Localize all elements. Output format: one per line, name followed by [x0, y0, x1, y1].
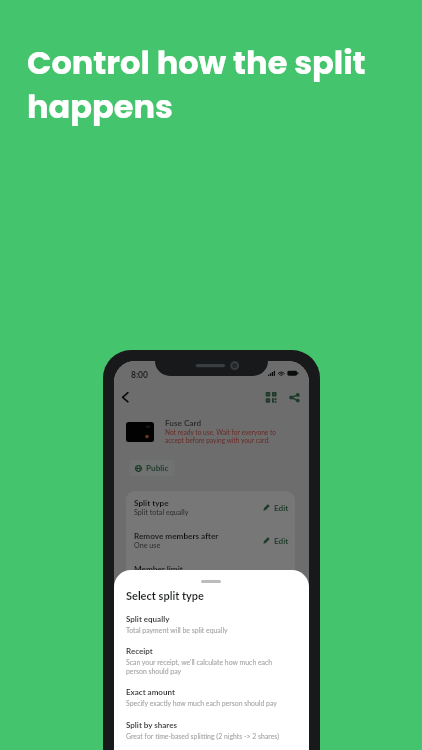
staticText: Specify exactly how much each person sho… — [126, 699, 277, 707]
staticText: 8:00 — [131, 370, 148, 380]
button[interactable]: Share — [287, 390, 303, 406]
staticText: Total payment will be split equally — [126, 626, 228, 634]
staticText: Edit — [274, 569, 289, 579]
staticText: Split equally — [126, 614, 170, 624]
button[interactable]: Receipt — [114, 645, 309, 679]
button[interactable]: Split type — [126, 491, 295, 524]
button[interactable]: Exact amount — [114, 686, 309, 711]
staticText: Scan your receipt, we'll calculate how m… — [126, 658, 273, 675]
staticText: One use — [134, 541, 161, 550]
button[interactable]: Split equally — [114, 613, 309, 638]
staticText: Public — [146, 463, 169, 473]
staticText: Remove members after — [134, 531, 219, 541]
staticText: Great for time-based splitting (2 nights… — [126, 732, 280, 740]
staticText: Split type — [134, 498, 169, 508]
staticText: Exact amount — [126, 687, 175, 697]
button[interactable]: Split by shares — [114, 719, 309, 744]
staticText: Split total equally — [134, 508, 189, 517]
staticText: Control how the split happens — [27, 40, 366, 129]
staticText: Not ready to use. Wait for everyone to a… — [165, 428, 277, 445]
staticText: Split by shares — [126, 720, 177, 730]
button[interactable]: Remove members after — [126, 524, 295, 557]
staticText: Receipt — [126, 646, 153, 656]
staticText: Member limit — [134, 564, 183, 574]
staticText: Select split type — [126, 589, 204, 602]
staticText: Edit — [274, 536, 289, 546]
button[interactable]: Back — [117, 387, 135, 405]
button[interactable]: Public — [129, 460, 175, 476]
staticText: Fuse Card — [165, 418, 202, 428]
button[interactable]: QR code — [262, 389, 280, 407]
button[interactable]: Member limit — [126, 557, 295, 590]
staticText: Edit — [274, 503, 289, 513]
